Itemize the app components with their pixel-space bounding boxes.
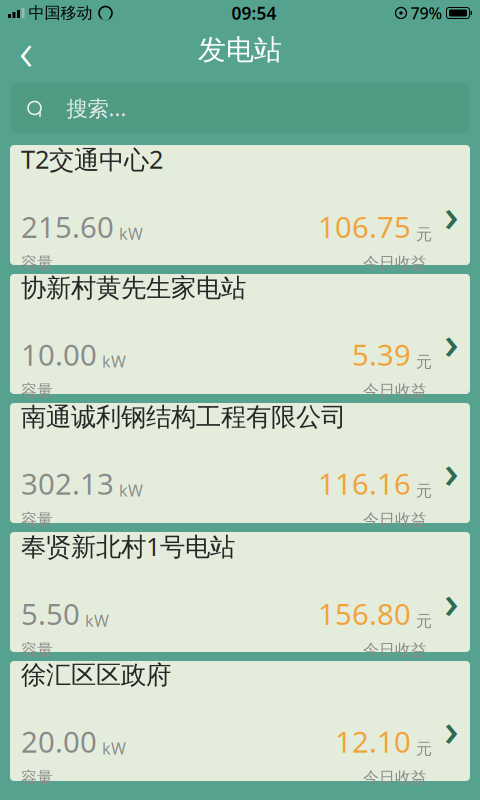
staticText: 79% (410, 2, 442, 24)
staticText: 116.16 (318, 464, 411, 503)
staticText: › (444, 441, 459, 501)
staticText: 今日收益 (363, 768, 427, 787)
staticText: 南通诚利钢结构工程有限公司 (21, 401, 346, 433)
staticText: 12.10 (335, 722, 411, 761)
staticText: 元 (416, 224, 432, 244)
staticText: 容量 (21, 253, 53, 273)
staticText: 发电站 (198, 33, 282, 67)
staticText: 5.50 (21, 594, 80, 633)
staticText: 今日收益 (363, 381, 427, 400)
staticText: 奉贤新北村1号电站 (21, 529, 235, 563)
staticText: 20.00 (21, 722, 97, 761)
staticText: 10.00 (21, 335, 97, 374)
button[interactable]: T2交通中心2 (10, 145, 470, 265)
staticText: 徐汇区区政府 (21, 659, 171, 691)
staticText: kW (102, 738, 126, 759)
staticText: 元 (416, 611, 432, 631)
staticText: › (444, 699, 459, 759)
staticText: T2交通中心2 (21, 142, 163, 176)
button[interactable]: 协新村黄先生家电站 (10, 274, 470, 394)
staticText: 302.13 (21, 464, 114, 503)
staticText: 今日收益 (363, 253, 427, 273)
staticText: 元 (416, 739, 432, 759)
staticText: 09:54 (231, 1, 276, 24)
staticText: 中国移动 (28, 3, 92, 23)
staticText: kW (119, 480, 143, 501)
staticText: 5.39 (352, 335, 411, 374)
staticText: ‹ (19, 15, 33, 85)
staticText: 搜索... (66, 94, 126, 122)
staticText: 容量 (21, 510, 53, 529)
staticText: › (444, 312, 459, 372)
staticText: 容量 (21, 640, 53, 660)
staticText: 今日收益 (363, 510, 427, 529)
button[interactable]: Back (0, 28, 52, 72)
staticText: 容量 (21, 768, 53, 787)
staticText: 106.75 (318, 207, 411, 246)
staticText: kW (119, 223, 143, 244)
button[interactable]: 奉贤新北村1号电站 (10, 532, 470, 652)
staticText: 215.60 (21, 207, 114, 246)
staticText: kW (85, 610, 109, 631)
staticText: 协新村黄先生家电站 (21, 272, 246, 304)
staticText: › (444, 571, 459, 631)
staticText: kW (102, 351, 126, 372)
staticText: 元 (416, 481, 432, 501)
staticText: 156.80 (318, 594, 411, 633)
button[interactable]: 南通诚利钢结构工程有限公司 (10, 403, 470, 523)
staticText: › (444, 184, 459, 244)
staticText: 容量 (21, 381, 53, 400)
staticText: 今日收益 (363, 640, 427, 660)
button[interactable]: 徐汇区区政府 (10, 661, 470, 781)
staticText: 元 (416, 352, 432, 372)
button[interactable]: 搜索 (10, 82, 469, 134)
